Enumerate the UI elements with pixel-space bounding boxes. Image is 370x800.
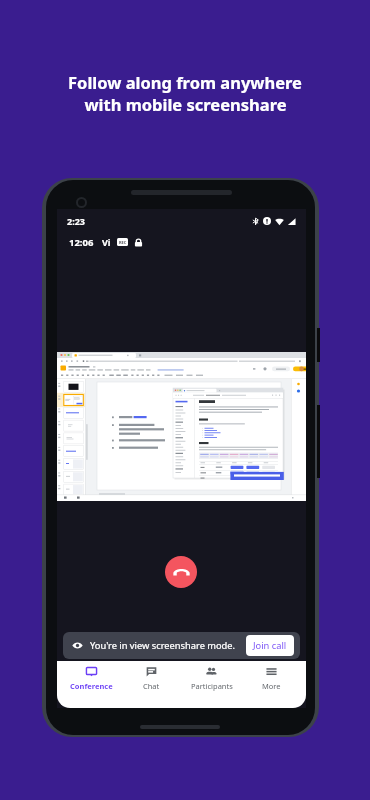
staticText: REC: [119, 240, 127, 245]
staticText: 12:06: [69, 236, 94, 249]
staticText: 2:23: [67, 215, 85, 227]
button[interactable]: Participants: [189, 661, 234, 708]
staticText: with mobile screenshare: [84, 93, 287, 115]
staticText: More: [262, 681, 281, 691]
staticText: Chat: [143, 681, 160, 691]
staticText: Conference: [70, 681, 113, 691]
button[interactable]: More: [249, 661, 294, 708]
button[interactable]: Join call: [246, 635, 294, 656]
staticText: Vi: [102, 236, 111, 248]
staticText: Participants: [191, 681, 233, 691]
staticText: You're in view screenshare mode.: [90, 639, 236, 652]
staticText: Join call: [253, 639, 287, 652]
button[interactable]: Chat: [129, 661, 174, 708]
button[interactable]: Conference: [69, 661, 114, 708]
button[interactable]: End call: [165, 556, 197, 588]
staticText: Follow along from anywhere: [68, 71, 302, 93]
